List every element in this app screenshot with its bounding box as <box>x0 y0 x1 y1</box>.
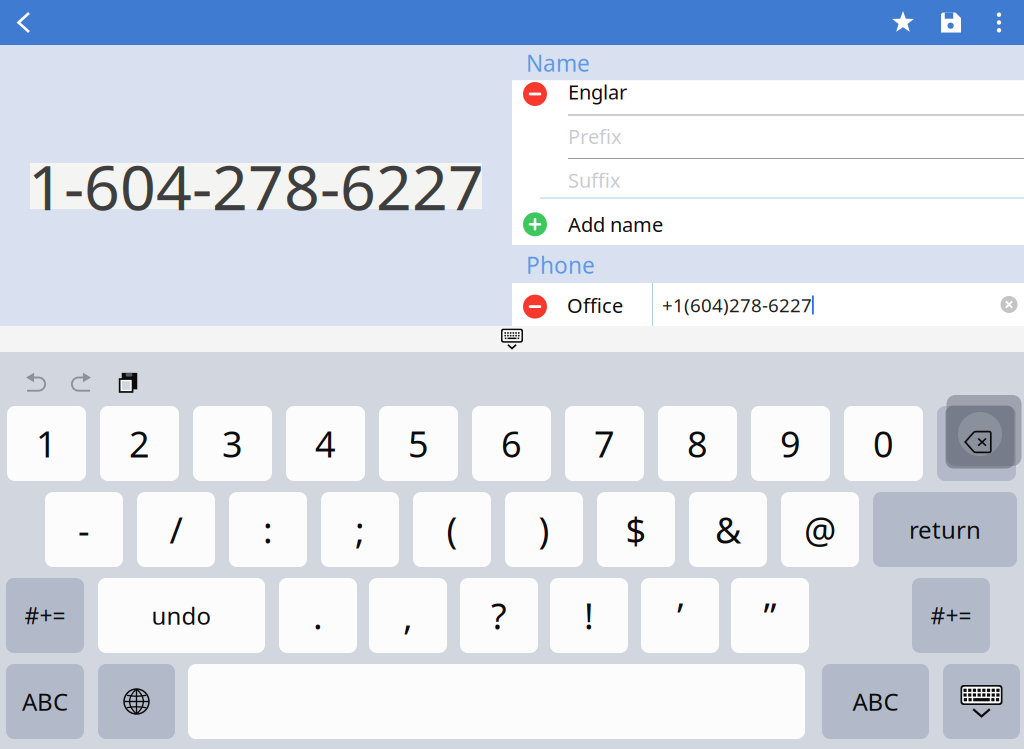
staticText: ABC <box>22 686 68 717</box>
staticText: 9 <box>780 420 801 467</box>
button[interactable]: 9 <box>751 406 830 481</box>
button[interactable]: ? <box>460 578 538 653</box>
button[interactable]: Phone number <box>653 283 1024 326</box>
button[interactable]: - <box>45 492 123 567</box>
button[interactable]: ; <box>321 492 399 567</box>
staticText: ) <box>538 506 549 553</box>
button[interactable]: #+= <box>6 578 84 653</box>
staticText: ’ <box>677 592 683 639</box>
staticText: . <box>313 592 323 639</box>
button[interactable]: @ <box>781 492 859 567</box>
button[interactable]: Englar <box>512 80 1024 114</box>
button[interactable]: Save <box>927 0 975 45</box>
button[interactable]: Next keyboard <box>98 664 175 739</box>
button[interactable]: Dismiss keyboard <box>943 664 1020 739</box>
button[interactable]: & <box>689 492 767 567</box>
staticText: 6 <box>501 420 522 467</box>
staticText: 8 <box>687 420 708 467</box>
button[interactable]: ABC <box>822 664 929 739</box>
staticText: ; <box>355 506 365 553</box>
button[interactable]: 0 <box>844 406 923 481</box>
button[interactable]: ! <box>550 578 628 653</box>
staticText: Add name <box>568 211 663 238</box>
button[interactable]: #+= <box>912 578 990 653</box>
button[interactable]: : <box>229 492 307 567</box>
button[interactable]: 4 <box>286 406 365 481</box>
button[interactable]: More options <box>977 0 1021 45</box>
button[interactable]: Suffix <box>512 158 1024 198</box>
staticText: Office <box>567 292 623 319</box>
staticText: Phone <box>526 250 595 280</box>
staticText: : <box>263 506 273 553</box>
staticText: Englar <box>568 78 627 105</box>
staticText: +1(604)278-6227 <box>662 293 812 317</box>
staticText: Prefix <box>568 123 622 150</box>
button[interactable]: ) <box>505 492 583 567</box>
staticText: / <box>169 506 182 553</box>
button[interactable]: undo <box>98 578 265 653</box>
button[interactable]: / <box>137 492 215 567</box>
staticText: 1-604-278-6227 <box>28 144 484 228</box>
staticText: ! <box>584 592 594 639</box>
button[interactable]: 6 <box>472 406 551 481</box>
button[interactable]: return <box>873 492 1017 567</box>
button[interactable]: ( <box>413 492 491 567</box>
button[interactable]: 5 <box>379 406 458 481</box>
staticText: 0 <box>873 420 894 467</box>
staticText: 5 <box>408 420 429 467</box>
staticText: 2 <box>129 420 150 467</box>
button[interactable]: 2 <box>100 406 179 481</box>
button[interactable]: Add name <box>512 198 1024 245</box>
staticText: #+= <box>24 600 65 630</box>
staticText: $ <box>625 506 646 553</box>
staticText: 4 <box>315 420 336 467</box>
button[interactable]: 1 <box>7 406 86 481</box>
button[interactable]: $ <box>597 492 675 567</box>
staticText: Suffix <box>568 167 621 193</box>
staticText: - <box>78 506 90 553</box>
staticText: #+= <box>930 600 971 630</box>
button[interactable]: 3 <box>193 406 272 481</box>
button[interactable]: Delete <box>937 406 1016 481</box>
staticText: 1 <box>36 420 57 467</box>
button[interactable]: Office <box>512 283 652 326</box>
staticText: return <box>909 514 981 545</box>
staticText: ? <box>491 592 507 639</box>
button[interactable]: Prefix <box>512 115 1024 158</box>
staticText: 7 <box>594 420 615 467</box>
staticText: ( <box>446 506 457 553</box>
staticText: ” <box>763 592 776 639</box>
button[interactable]: ” <box>731 578 809 653</box>
staticText: & <box>715 506 741 553</box>
button[interactable]: 8 <box>658 406 737 481</box>
button[interactable]: . <box>279 578 357 653</box>
button[interactable]: Favorite <box>879 0 927 45</box>
staticText: , <box>403 592 413 639</box>
button[interactable]: Hide keyboard <box>495 326 529 352</box>
button[interactable]: Back <box>0 0 48 45</box>
staticText: ABC <box>852 686 898 717</box>
button[interactable]: ’ <box>641 578 719 653</box>
staticText: 3 <box>222 420 243 467</box>
button[interactable]: Redo <box>59 363 103 403</box>
staticText: undo <box>151 600 211 631</box>
staticText: @ <box>804 506 836 553</box>
staticText: Name <box>526 48 590 78</box>
button[interactable]: ABC <box>6 664 84 739</box>
button[interactable]: 7 <box>565 406 644 481</box>
button[interactable]: , <box>369 578 447 653</box>
button[interactable]: Paste <box>108 363 148 403</box>
button[interactable]: Undo <box>14 363 58 403</box>
button[interactable]: Clear text <box>994 289 1024 319</box>
